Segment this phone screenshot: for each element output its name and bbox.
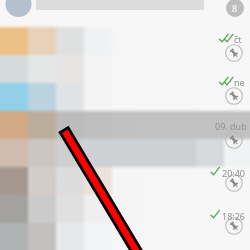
staticText: čt [234, 33, 242, 45]
staticText: 09. dub [215, 120, 247, 132]
staticText: ne [234, 76, 245, 88]
button[interactable]: Profile photo [6, 0, 32, 26]
staticText: 18:26 [222, 210, 246, 222]
staticText: 8 [232, 2, 238, 14]
button[interactable]: Unread messages [226, 0, 244, 17]
staticText: 20:40 [222, 167, 246, 179]
